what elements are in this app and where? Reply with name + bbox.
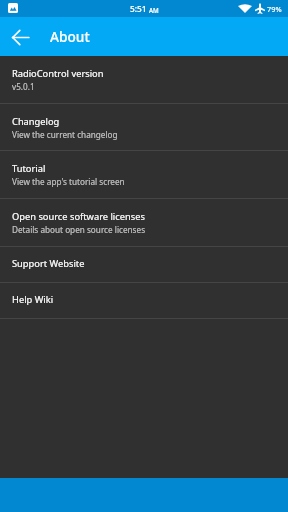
staticText: Details about open source licenses xyxy=(12,224,146,235)
button[interactable]: Help Wiki xyxy=(0,283,288,319)
staticText: 5:51 xyxy=(130,3,147,14)
staticText: View the app's tutorial screen xyxy=(12,176,125,187)
staticText: 79% xyxy=(267,4,282,14)
staticText: Tutorial xyxy=(12,162,46,175)
staticText: RadioControl version xyxy=(12,67,104,80)
staticText: Open source software licenses xyxy=(12,210,145,223)
staticText: Changelog xyxy=(12,115,60,128)
staticText: View the current changelog xyxy=(12,129,118,140)
staticText: AM xyxy=(149,6,159,14)
staticText: About xyxy=(50,27,90,46)
button[interactable]: Navigate up xyxy=(2,19,38,55)
button[interactable]: Tutorial xyxy=(0,151,288,199)
staticText: Support Website xyxy=(12,257,85,270)
button[interactable]: Changelog xyxy=(0,104,288,151)
button[interactable]: Support Website xyxy=(0,247,288,283)
button[interactable]: Open source software licenses xyxy=(0,199,288,247)
staticText: Help Wiki xyxy=(12,293,54,306)
staticText: v5.0.1 xyxy=(12,81,35,92)
button[interactable]: RadioControl version xyxy=(0,56,288,104)
